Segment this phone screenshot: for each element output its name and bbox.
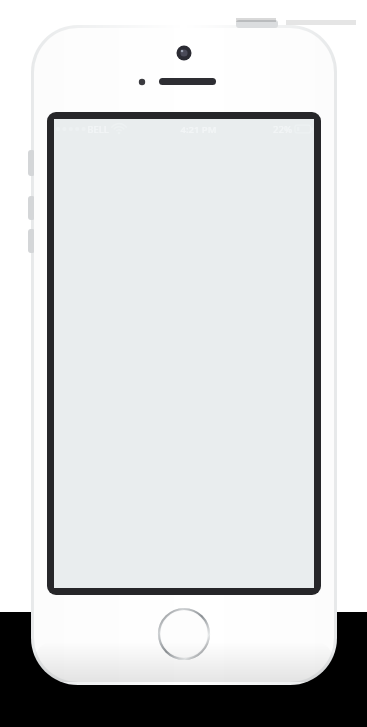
staticText: BELL bbox=[87, 123, 109, 136]
staticText: 22% bbox=[273, 123, 292, 136]
staticText: 4:21 PM bbox=[180, 123, 217, 136]
button[interactable]: Home bbox=[159, 609, 209, 659]
